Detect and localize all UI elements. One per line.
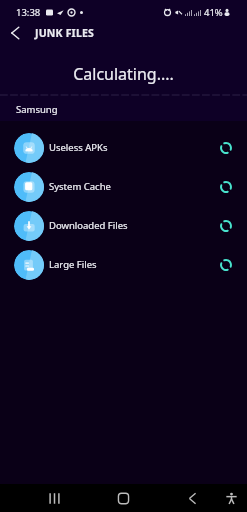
staticText: System Cache <box>49 180 111 193</box>
staticText: Calculating.... <box>0 63 247 85</box>
staticText: Samsung <box>16 103 58 116</box>
button[interactable]: System Cache <box>0 167 247 206</box>
staticText: JUNK FILES <box>35 26 95 40</box>
button[interactable]: Back <box>2 20 28 46</box>
button[interactable]: Home <box>111 486 135 510</box>
button[interactable]: Recent apps <box>42 486 66 510</box>
button[interactable]: Accessibility <box>219 486 243 510</box>
staticText: 41% <box>204 6 223 19</box>
button[interactable]: Useless APKs <box>0 128 247 167</box>
button[interactable]: Downloaded Files <box>0 206 247 245</box>
staticText: Downloaded Files <box>49 219 128 232</box>
staticText: Useless APKs <box>49 141 108 154</box>
button[interactable]: Back <box>180 486 204 510</box>
button[interactable]: Large Files <box>0 245 247 284</box>
staticText: 13:38 <box>16 6 41 19</box>
staticText: Large Files <box>49 258 97 271</box>
